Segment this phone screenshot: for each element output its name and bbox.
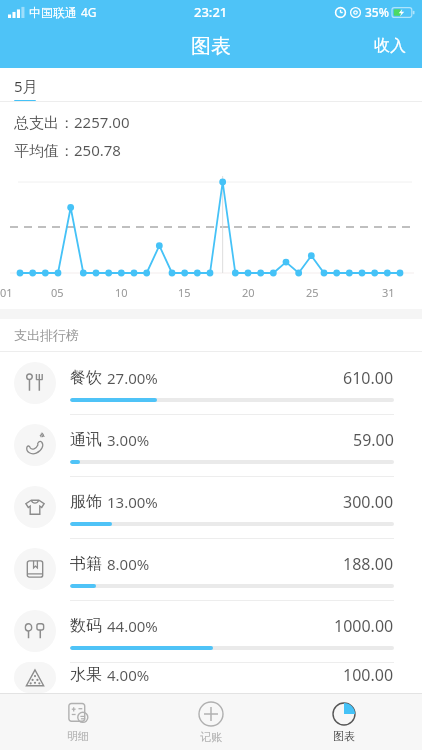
- button[interactable]: 图表: [289, 694, 399, 750]
- button[interactable]: 收入: [358, 26, 422, 66]
- staticText: 25: [306, 285, 319, 300]
- staticText: 水果: [70, 665, 102, 685]
- button[interactable]: 书籍: [0, 538, 422, 600]
- button[interactable]: 服饰: [0, 476, 422, 538]
- staticText: 1000.00: [334, 615, 394, 637]
- button[interactable]: 5月: [14, 76, 38, 102]
- staticText: 4G: [81, 4, 97, 20]
- staticText: 35%: [365, 4, 389, 20]
- staticText: 100.00: [343, 664, 394, 686]
- staticText: 3.00%: [107, 430, 150, 450]
- staticText: 13.00%: [107, 492, 158, 512]
- staticText: 书籍: [70, 554, 102, 574]
- button[interactable]: 数码: [0, 600, 422, 662]
- other: 记账: [198, 701, 224, 727]
- button[interactable]: 水果: [0, 662, 422, 693]
- staticText: 图表: [191, 34, 231, 59]
- staticText: 59.00: [353, 429, 394, 451]
- staticText: 通讯: [70, 430, 102, 450]
- staticText: 4.00%: [107, 665, 150, 685]
- button[interactable]: 餐饮: [0, 352, 422, 414]
- button[interactable]: 记账: [156, 694, 266, 750]
- other: 明细: [66, 702, 90, 726]
- staticText: 5月: [14, 76, 38, 96]
- staticText: 23:21: [194, 3, 228, 21]
- button[interactable]: 通讯: [0, 414, 422, 476]
- button[interactable]: 明细: [23, 694, 133, 750]
- staticText: 10: [115, 285, 128, 300]
- staticText: 支出排行榜: [14, 327, 79, 343]
- staticText: 610.00: [343, 367, 394, 389]
- staticText: 01: [0, 285, 13, 300]
- staticText: 图表: [333, 729, 355, 743]
- staticText: 记账: [200, 730, 222, 744]
- staticText: 188.00: [343, 553, 394, 575]
- staticText: 15: [178, 285, 191, 300]
- staticText: 平均值：250.78: [14, 140, 121, 160]
- staticText: 300.00: [343, 491, 394, 513]
- staticText: 数码: [70, 616, 102, 636]
- staticText: 中国联通: [29, 5, 77, 20]
- staticText: 31: [382, 285, 395, 300]
- staticText: 服饰: [70, 492, 102, 512]
- staticText: 20: [242, 285, 255, 300]
- staticText: 27.00%: [107, 368, 158, 388]
- staticText: 餐饮: [70, 368, 102, 388]
- staticText: 05: [51, 285, 64, 300]
- staticText: 总支出：2257.00: [14, 112, 130, 132]
- staticText: 明细: [67, 729, 89, 743]
- staticText: 8.00%: [107, 554, 150, 574]
- staticText: 44.00%: [107, 616, 158, 636]
- other: 图表: [332, 702, 356, 726]
- staticText: 收入: [374, 36, 406, 56]
